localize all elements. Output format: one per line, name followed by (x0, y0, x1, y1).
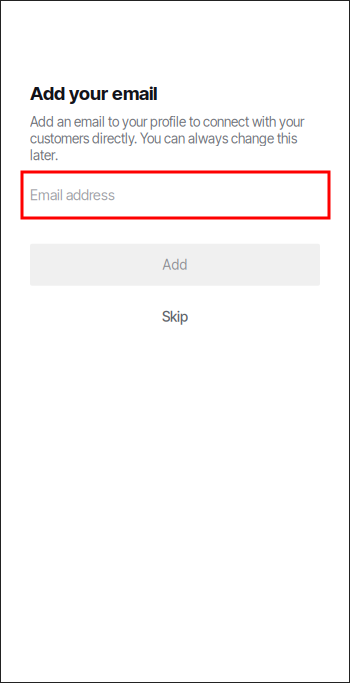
button[interactable]: Email address (30, 183, 320, 229)
staticText: Add an email to your profile to connect … (30, 114, 304, 163)
staticText: Skip (162, 308, 188, 325)
button[interactable]: Skip (30, 300, 320, 334)
staticText: Add (162, 256, 187, 273)
staticText: Email address (30, 186, 115, 204)
button[interactable]: Add (30, 244, 320, 286)
staticText: Add your email (30, 82, 157, 105)
